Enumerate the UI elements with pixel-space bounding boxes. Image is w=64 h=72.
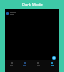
button[interactable]: Tab: [45, 60, 59, 72]
staticText: Dark Mode: [22, 2, 43, 7]
button[interactable]: [6, 12, 59, 15]
button[interactable]: Tab: [31, 60, 45, 72]
button[interactable]: Add: [52, 56, 56, 60]
button[interactable]: Tab: [5, 60, 18, 72]
button[interactable]: Tab: [18, 60, 31, 72]
